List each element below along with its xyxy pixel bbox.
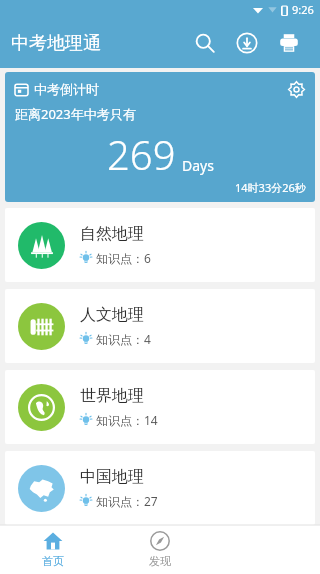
- staticText: 知识点：4: [96, 331, 151, 347]
- staticText: 中考倒计时: [34, 81, 99, 97]
- staticText: Days: [182, 156, 214, 175]
- button[interactable]: 人文地理: [5, 289, 315, 363]
- staticText: 中考地理通: [11, 32, 101, 55]
- button[interactable]: 首页: [0, 525, 106, 574]
- staticText: 知识点：14: [96, 412, 158, 428]
- staticText: 9:26: [292, 2, 314, 17]
- button[interactable]: Settings: [283, 76, 309, 102]
- staticText: 269: [107, 127, 176, 181]
- staticText: 14时33分26秒: [235, 180, 306, 195]
- staticText: 自然地理: [80, 224, 144, 244]
- button[interactable]: 自然地理: [5, 208, 315, 282]
- button[interactable]: 发现: [106, 525, 213, 574]
- staticText: 发现: [149, 554, 171, 568]
- staticText: 中国地理: [80, 467, 144, 487]
- button[interactable]: 世界地理: [5, 370, 315, 444]
- staticText: 世界地理: [80, 386, 144, 406]
- button[interactable]: Print: [268, 22, 310, 64]
- staticText: 距离2023年中考只有: [15, 105, 136, 123]
- button[interactable]: Search: [184, 22, 226, 64]
- staticText: 知识点：6: [96, 250, 151, 266]
- button[interactable]: Download: [226, 22, 268, 64]
- staticText: 人文地理: [80, 305, 144, 325]
- button[interactable]: 中国地理: [5, 451, 315, 525]
- button[interactable]: 中考倒计时: [5, 72, 315, 202]
- staticText: 首页: [42, 554, 64, 568]
- staticText: 知识点：27: [96, 493, 158, 509]
